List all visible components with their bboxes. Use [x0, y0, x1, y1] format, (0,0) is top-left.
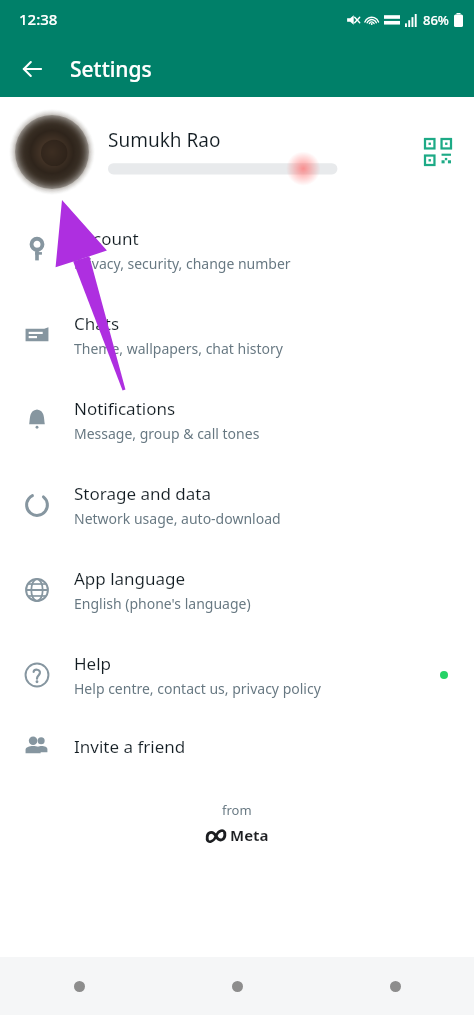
button[interactable]: Help [0, 632, 474, 717]
button[interactable]: QR code [418, 132, 458, 172]
staticText: Theme, wallpapers, chat history [74, 339, 283, 358]
button[interactable]: Account [0, 207, 474, 292]
button[interactable]: Invite a friend [0, 717, 474, 775]
button[interactable]: Navigation [0, 957, 158, 1015]
button[interactable]: Chats [0, 292, 474, 377]
staticText: Message, group & call tones [74, 424, 260, 443]
staticText: Help [74, 652, 112, 675]
staticText: Help centre, contact us, privacy policy [74, 679, 321, 698]
button[interactable]: Storage and data [0, 462, 474, 547]
button[interactable]: Back [8, 45, 56, 93]
staticText: Network usage, auto-download [74, 509, 281, 528]
staticText: 86% [423, 11, 449, 29]
staticText: from [222, 801, 252, 819]
button[interactable]: Sumukh Rao [0, 97, 474, 207]
button[interactable]: Navigation [316, 957, 474, 1015]
staticText: 12:38 [19, 9, 58, 29]
staticText: Invite a friend [74, 735, 186, 758]
staticText: Chats [74, 312, 120, 335]
button[interactable]: Navigation [158, 957, 316, 1015]
staticText: Storage and data [74, 482, 212, 505]
staticText: Meta [230, 825, 269, 845]
staticText: Privacy, security, change number [74, 254, 291, 273]
staticText: Account [74, 227, 139, 250]
staticText: Sumukh Rao [108, 127, 221, 153]
staticText: Settings [70, 55, 152, 84]
staticText: App language [74, 567, 186, 590]
button[interactable]: App language [0, 547, 474, 632]
button[interactable]: Notifications [0, 377, 474, 462]
staticText: English (phone's language) [74, 594, 251, 613]
staticText: Notifications [74, 397, 176, 420]
